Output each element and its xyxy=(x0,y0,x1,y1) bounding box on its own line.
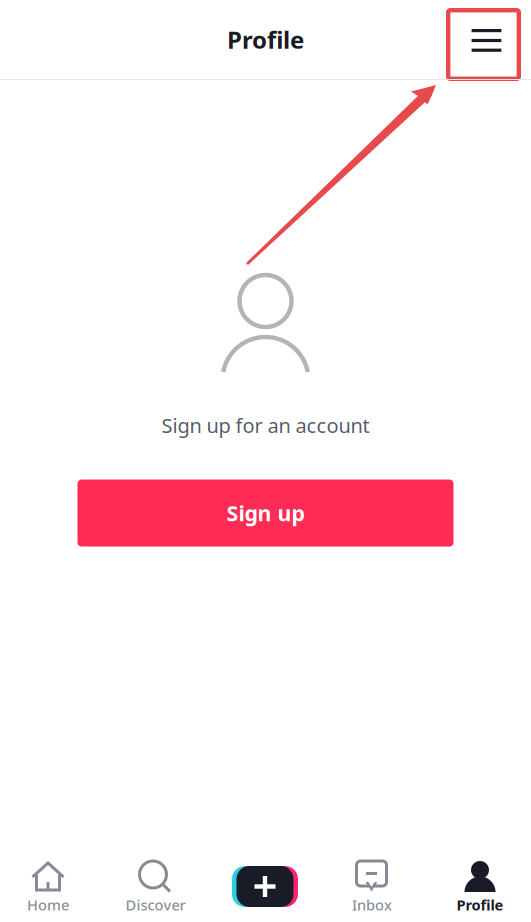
button[interactable]: Sign up xyxy=(77,480,453,547)
button[interactable]: Create xyxy=(215,843,315,922)
staticText: Sign up for an account xyxy=(161,412,369,439)
button[interactable]: Discover xyxy=(96,843,215,922)
staticText: Profile xyxy=(456,895,503,914)
staticText: Sign up xyxy=(226,499,304,527)
button[interactable]: Profile xyxy=(429,843,531,922)
button[interactable]: Inbox xyxy=(315,843,429,922)
staticText: Inbox xyxy=(352,895,392,914)
staticText: Home xyxy=(27,895,69,914)
staticText: Discover xyxy=(125,895,185,914)
button[interactable]: Menu xyxy=(446,8,521,81)
staticText: Profile xyxy=(227,24,304,55)
button[interactable]: Home xyxy=(0,843,96,922)
